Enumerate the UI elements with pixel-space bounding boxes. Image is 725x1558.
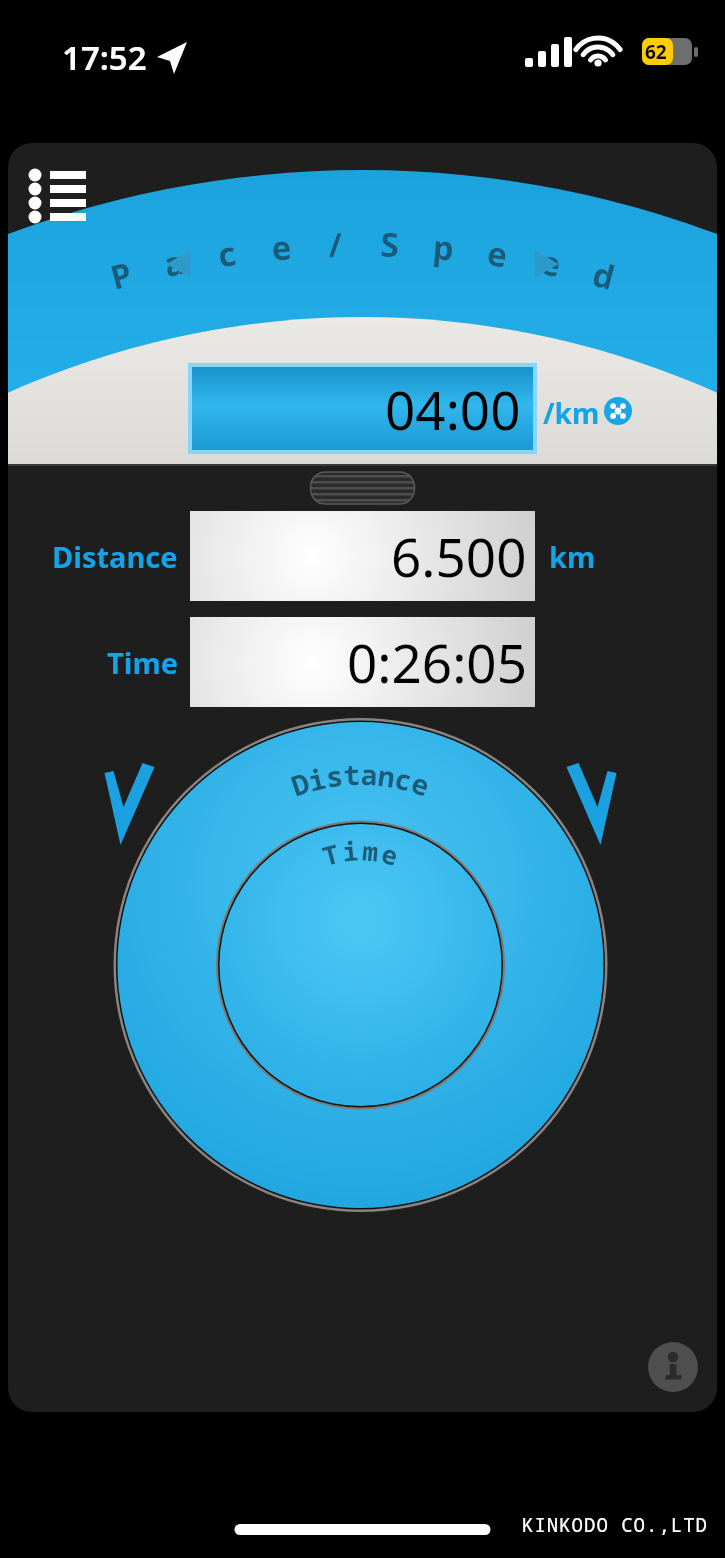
button[interactable]: Menu bbox=[28, 168, 90, 224]
button[interactable]: Info bbox=[648, 1342, 698, 1392]
